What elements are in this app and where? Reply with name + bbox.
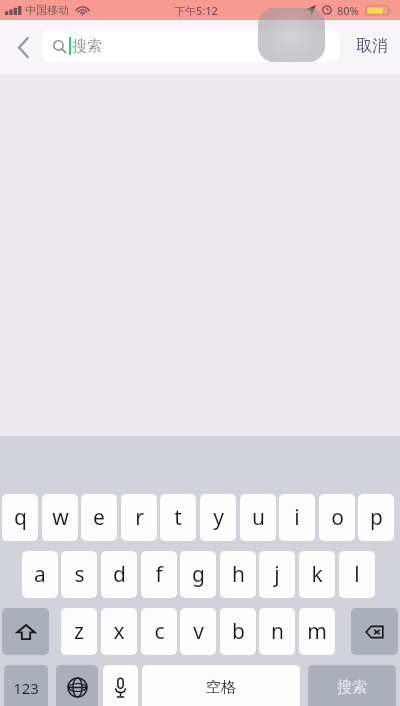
button[interactable]: o bbox=[319, 494, 355, 541]
staticText: w bbox=[52, 503, 69, 532]
staticText: c bbox=[154, 617, 165, 646]
staticText: r bbox=[135, 503, 144, 532]
button[interactable]: t bbox=[160, 494, 196, 541]
button[interactable]: Shift bbox=[2, 608, 49, 655]
staticText: p bbox=[370, 503, 383, 532]
button[interactable]: a bbox=[22, 551, 58, 598]
staticText: h bbox=[232, 560, 245, 589]
staticText: 搜索 bbox=[72, 37, 102, 56]
staticText: i bbox=[294, 503, 300, 532]
staticText: 80% bbox=[337, 3, 359, 18]
button[interactable]: 搜索 bbox=[42, 30, 340, 62]
button[interactable]: r bbox=[121, 494, 157, 541]
button[interactable]: Back bbox=[8, 32, 38, 62]
staticText: 下午5:12 bbox=[174, 3, 218, 18]
button[interactable]: y bbox=[200, 494, 236, 541]
staticText: j bbox=[274, 560, 280, 589]
button[interactable]: Switch language bbox=[56, 665, 98, 706]
button[interactable]: 搜索 bbox=[308, 665, 396, 706]
button[interactable]: w bbox=[42, 494, 78, 541]
button[interactable]: n bbox=[259, 608, 295, 655]
button[interactable]: 空格 bbox=[142, 665, 300, 706]
button[interactable]: Voice input bbox=[103, 665, 138, 706]
staticText: t bbox=[174, 503, 182, 532]
staticText: q bbox=[14, 503, 27, 532]
button[interactable]: e bbox=[81, 494, 117, 541]
staticText: k bbox=[311, 560, 323, 589]
staticText: 搜索 bbox=[337, 678, 367, 697]
button[interactable]: 取消 bbox=[347, 30, 397, 62]
staticText: 中国移动 bbox=[25, 3, 69, 17]
button[interactable]: v bbox=[180, 608, 216, 655]
button[interactable]: p bbox=[358, 494, 394, 541]
staticText: y bbox=[213, 503, 224, 532]
button[interactable]: d bbox=[101, 551, 137, 598]
staticText: m bbox=[307, 617, 327, 646]
button[interactable]: i bbox=[279, 494, 315, 541]
staticText: x bbox=[113, 617, 125, 646]
staticText: 123 bbox=[13, 678, 39, 698]
staticText: g bbox=[192, 560, 205, 589]
button[interactable]: g bbox=[180, 551, 216, 598]
staticText: l bbox=[354, 560, 360, 589]
staticText: z bbox=[74, 617, 84, 646]
staticText: 取消 bbox=[356, 36, 388, 56]
button[interactable]: l bbox=[339, 551, 375, 598]
staticText: o bbox=[331, 503, 344, 532]
button[interactable]: z bbox=[61, 608, 97, 655]
staticText: s bbox=[74, 560, 85, 589]
button[interactable]: h bbox=[220, 551, 256, 598]
button[interactable]: j bbox=[259, 551, 295, 598]
staticText: 空格 bbox=[206, 678, 236, 697]
button[interactable]: c bbox=[141, 608, 177, 655]
staticText: a bbox=[34, 560, 46, 589]
staticText: e bbox=[93, 503, 105, 532]
staticText: u bbox=[252, 503, 265, 532]
button[interactable]: Backspace bbox=[351, 608, 398, 655]
button[interactable]: u bbox=[240, 494, 276, 541]
button[interactable]: s bbox=[61, 551, 97, 598]
button[interactable]: k bbox=[299, 551, 335, 598]
button[interactable]: q bbox=[2, 494, 38, 541]
button[interactable]: b bbox=[220, 608, 256, 655]
staticText: d bbox=[113, 560, 126, 589]
button[interactable]: 123 bbox=[4, 665, 48, 706]
button[interactable]: m bbox=[299, 608, 335, 655]
staticText: n bbox=[271, 617, 284, 646]
button[interactable]: f bbox=[141, 551, 177, 598]
staticText: f bbox=[155, 560, 163, 589]
staticText: b bbox=[232, 617, 245, 646]
button[interactable]: x bbox=[101, 608, 137, 655]
staticText: v bbox=[193, 617, 204, 646]
